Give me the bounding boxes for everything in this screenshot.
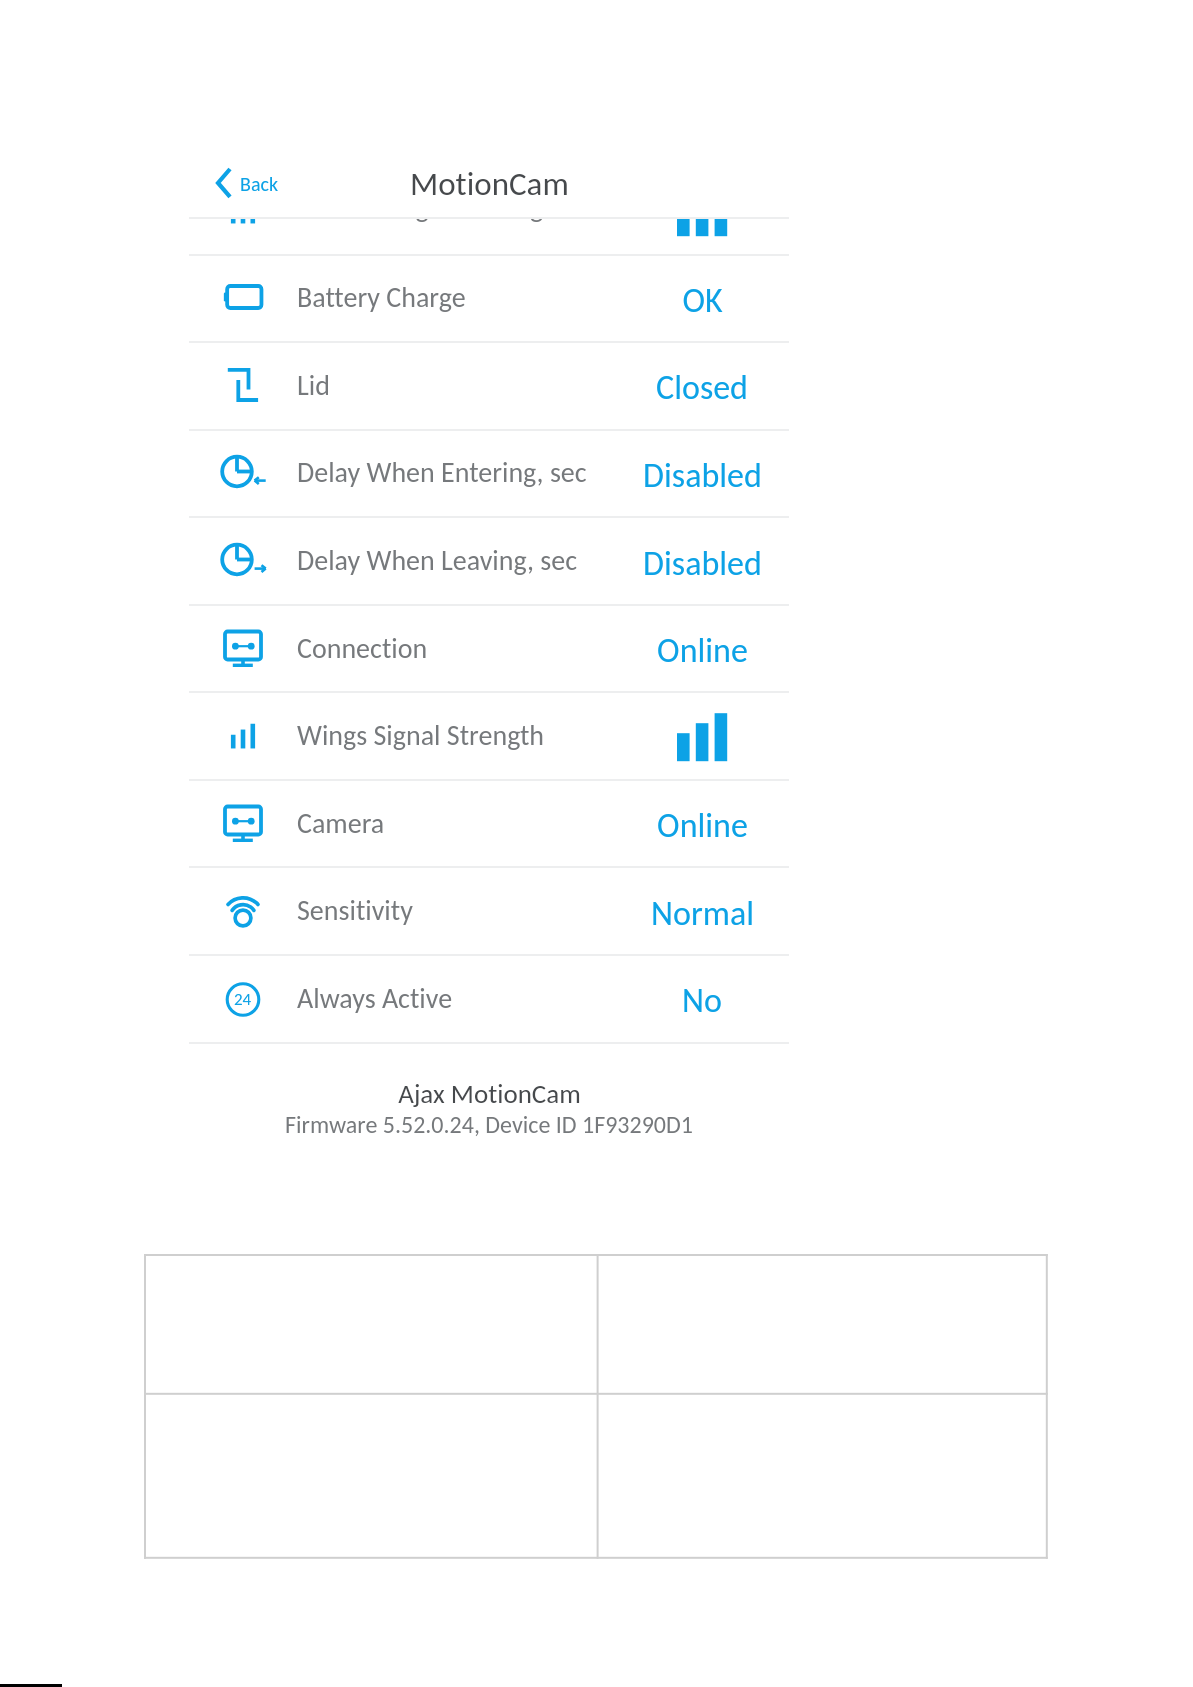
- button[interactable]: [189, 866, 789, 954]
- button[interactable]: [189, 516, 789, 604]
- staticText: Closed: [656, 367, 748, 409]
- staticText: Lid: [297, 368, 330, 402]
- staticText: Jeweller Signal Strength: [297, 217, 567, 224]
- staticText: Online: [657, 805, 748, 847]
- button[interactable]: [189, 779, 789, 867]
- staticText: 24: [234, 989, 252, 1010]
- staticText: Wings Signal Strength: [297, 718, 544, 752]
- staticText: Normal: [651, 893, 754, 935]
- button[interactable]: [189, 954, 789, 1042]
- staticText: Ajax MotionCam: [398, 1077, 581, 1110]
- staticText: Camera: [297, 806, 385, 840]
- staticText: Always Active: [297, 981, 453, 1015]
- staticText: Disabled: [643, 543, 762, 585]
- staticText: Back: [240, 172, 279, 196]
- staticText: Online: [657, 630, 748, 672]
- button[interactable]: [189, 217, 789, 254]
- staticText: Sensitivity: [297, 893, 413, 927]
- button[interactable]: [189, 341, 789, 429]
- button[interactable]: [189, 429, 789, 517]
- staticText: OK: [682, 280, 723, 322]
- button[interactable]: [189, 691, 789, 779]
- staticText: Disabled: [643, 455, 762, 497]
- staticText: Delay When Entering, sec: [297, 455, 587, 489]
- staticText: Battery Charge: [297, 280, 466, 314]
- staticText: No: [682, 980, 722, 1022]
- staticText: Delay When Leaving, sec: [297, 543, 578, 577]
- staticText: Firmware 5.52.0.24, Device ID 1F93290D1: [285, 1110, 693, 1139]
- button[interactable]: [189, 254, 789, 342]
- button[interactable]: Back: [208, 162, 284, 204]
- button[interactable]: [189, 604, 789, 692]
- staticText: Connection: [297, 631, 428, 665]
- staticText: MotionCam: [410, 164, 569, 204]
